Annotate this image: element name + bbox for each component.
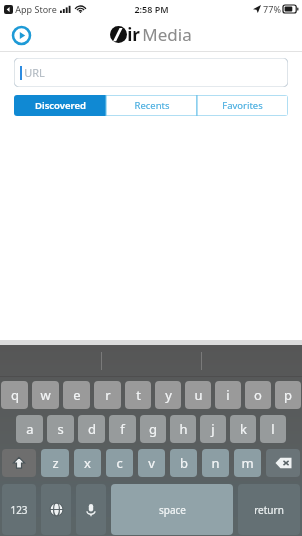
button[interactable]: Play <box>10 24 32 46</box>
button[interactable]: p <box>275 381 301 409</box>
staticText: w <box>40 386 51 404</box>
staticText: e <box>73 386 81 404</box>
button[interactable]: l <box>260 415 286 443</box>
button[interactable]: k <box>230 415 256 443</box>
button[interactable]: o <box>245 381 271 409</box>
staticText: u <box>194 386 203 404</box>
button[interactable]: Shift <box>2 449 36 477</box>
button[interactable]: URL <box>14 58 288 87</box>
button[interactable]: m <box>234 449 261 477</box>
button[interactable]: s <box>47 415 74 443</box>
button[interactable]: f <box>109 415 136 443</box>
button[interactable]: Change keyboard <box>41 484 71 535</box>
button[interactable]: w <box>32 381 59 409</box>
staticText: x <box>84 454 91 472</box>
staticText: g <box>149 420 157 438</box>
staticText: n <box>211 454 220 472</box>
button[interactable]: space <box>111 484 233 535</box>
button[interactable]: a <box>16 415 43 443</box>
button[interactable]: t <box>125 381 151 409</box>
button[interactable]: Discovered <box>14 95 106 116</box>
staticText: l <box>271 420 275 438</box>
button[interactable]: r <box>94 381 121 409</box>
staticText: c <box>116 454 123 472</box>
staticText: Recents <box>134 99 170 112</box>
button[interactable]: g <box>140 415 166 443</box>
button[interactable]: Backspace <box>266 449 300 477</box>
staticText: z <box>52 454 59 472</box>
button[interactable]: v <box>138 449 165 477</box>
button[interactable]: z <box>41 449 69 477</box>
button[interactable]: q <box>1 381 28 409</box>
button[interactable]: i <box>215 381 241 409</box>
staticText: Favorites <box>222 99 263 112</box>
button[interactable]: y <box>155 381 181 409</box>
staticText: URL <box>24 65 45 80</box>
staticText: return <box>254 503 284 517</box>
button[interactable]: Favorites <box>197 95 288 116</box>
staticText: h <box>179 420 188 438</box>
staticText: space <box>159 503 186 517</box>
staticText: q <box>11 386 19 404</box>
staticText: j <box>211 420 215 438</box>
button[interactable]: x <box>74 449 101 477</box>
staticText: ir <box>127 23 140 46</box>
button[interactable]: c <box>106 449 133 477</box>
staticText: App Store <box>15 3 57 15</box>
staticText: m <box>241 454 254 472</box>
staticText: 123 <box>10 503 28 517</box>
staticText: f <box>120 420 125 438</box>
button[interactable]: e <box>63 381 90 409</box>
button[interactable]: j <box>200 415 226 443</box>
staticText: Discovered <box>35 99 86 112</box>
button[interactable]: Dictate <box>76 484 106 535</box>
staticText: r <box>105 386 111 404</box>
staticText: b <box>180 454 188 472</box>
staticText: k <box>240 420 247 438</box>
button[interactable]: h <box>170 415 196 443</box>
staticText: o <box>254 386 262 404</box>
staticText: s <box>57 420 64 438</box>
staticText: p <box>284 386 292 404</box>
staticText: y <box>165 386 172 404</box>
staticText: i <box>226 386 230 404</box>
button[interactable]: d <box>78 415 105 443</box>
staticText: 77% <box>263 3 281 15</box>
button[interactable]: b <box>170 449 197 477</box>
button[interactable]: return <box>238 484 300 535</box>
button[interactable]: 123 <box>2 484 36 535</box>
staticText: 2:58 PM <box>134 3 169 15</box>
staticText: a <box>26 420 34 438</box>
staticText: d <box>88 420 96 438</box>
staticText: t <box>136 386 141 404</box>
staticText: v <box>148 454 155 472</box>
button[interactable]: Recents <box>106 95 197 116</box>
staticText: Media <box>142 23 192 46</box>
button[interactable]: n <box>202 449 229 477</box>
button[interactable]: u <box>185 381 211 409</box>
